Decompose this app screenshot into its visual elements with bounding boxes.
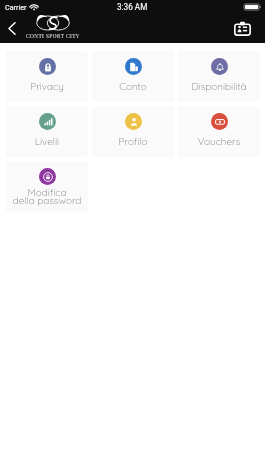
staticText: Vouchers [178,135,260,148]
button[interactable]: Modifica della password [6,161,88,212]
staticText: Carrier [5,3,27,11]
staticText: Privacy [6,80,88,93]
staticText: CONTI SPORT CITY [26,32,80,39]
button[interactable]: Membership card [231,14,254,43]
staticText: Modifica della password [6,186,88,207]
button[interactable]: Disponibilità [178,51,260,102]
button[interactable]: Profilo [92,106,174,157]
button[interactable]: Privacy [6,51,88,102]
staticText: Livelli [6,135,88,148]
button[interactable]: Back [0,14,24,43]
staticText: Conto [92,80,174,93]
button[interactable]: Conto [92,51,174,102]
button[interactable]: Vouchers [178,106,260,157]
staticText: Profilo [92,135,174,148]
button[interactable]: Livelli [6,106,88,157]
staticText: Disponibilità [178,80,260,93]
staticText: 3:36 AM [117,2,148,12]
